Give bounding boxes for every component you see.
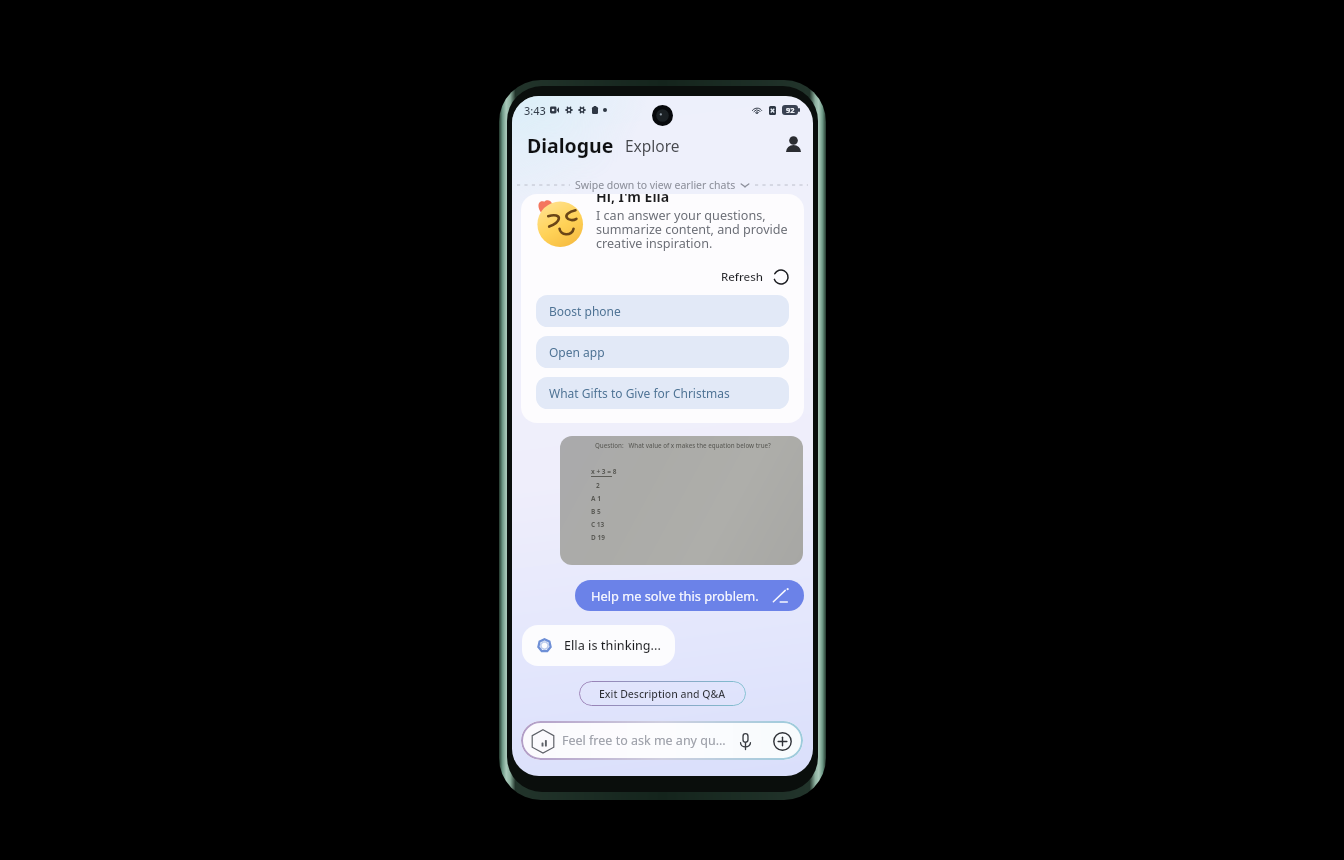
staticText: Exit Description and Q&A bbox=[599, 687, 726, 701]
button[interactable]: Hi, I'm Ella bbox=[521, 194, 804, 423]
button[interactable]: Ella is thinking... bbox=[522, 625, 675, 666]
staticText: B 5 bbox=[591, 507, 601, 516]
staticText: A 1 bbox=[591, 494, 601, 503]
staticText: I can answer your questions, summarize c… bbox=[596, 207, 788, 251]
staticText: Refresh bbox=[721, 269, 764, 285]
staticText: x + 3 = 8 bbox=[591, 467, 617, 476]
button[interactable]: Swipe down to view earlier chats bbox=[512, 175, 813, 195]
staticText: Help me solve this problem. bbox=[591, 587, 759, 604]
staticText: Open app bbox=[549, 344, 605, 360]
staticText: D 19 bbox=[591, 533, 605, 542]
button[interactable]: Dialogue bbox=[525, 132, 616, 159]
staticText: 3:43 bbox=[524, 103, 546, 118]
button[interactable]: Add attachment bbox=[770, 729, 794, 753]
staticText: Hi, I'm Ella bbox=[596, 194, 670, 206]
button[interactable]: Profile bbox=[778, 130, 808, 160]
staticText: Question: What value of x makes the equa… bbox=[595, 441, 771, 449]
button[interactable]: Boost phone bbox=[536, 295, 789, 327]
button[interactable]: Open app bbox=[536, 336, 789, 368]
staticText: 2 bbox=[591, 481, 600, 490]
staticText: Swipe down to view earlier chats bbox=[575, 178, 736, 192]
button[interactable]: Refresh bbox=[536, 269, 789, 285]
staticText: Dialogue bbox=[527, 132, 614, 159]
button[interactable]: Voice input bbox=[733, 729, 757, 753]
button[interactable]: What Gifts to Give for Christmas bbox=[536, 377, 789, 409]
staticText: What Gifts to Give for Christmas bbox=[549, 385, 730, 401]
button[interactable]: Feel free to ask me any qu... bbox=[521, 721, 803, 760]
staticText: Feel free to ask me any qu... bbox=[562, 732, 726, 749]
staticText: C 13 bbox=[591, 520, 605, 529]
staticText: Boost phone bbox=[549, 303, 621, 319]
staticText: Explore bbox=[625, 135, 680, 156]
button[interactable]: Help me solve this problem. bbox=[575, 580, 804, 611]
button[interactable]: Explore bbox=[623, 135, 682, 156]
staticText: Ella is thinking... bbox=[564, 637, 661, 654]
button[interactable]: Question: What value of x makes the equa… bbox=[560, 436, 803, 565]
staticText: 92 bbox=[786, 105, 795, 115]
button[interactable]: Exit Description and Q&A bbox=[579, 681, 746, 706]
